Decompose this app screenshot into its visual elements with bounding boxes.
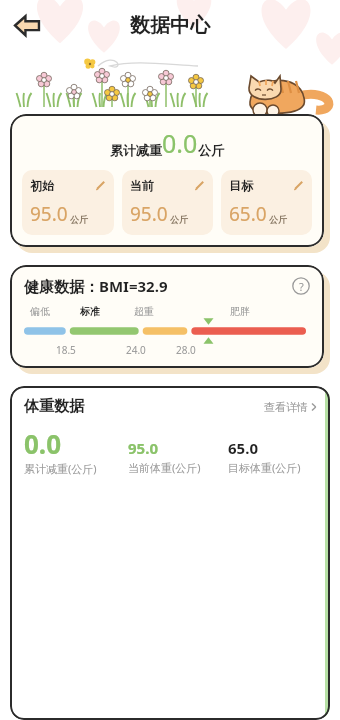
staticText: 累计减重(公斤) [24,461,97,476]
staticText: 目标 [229,178,253,193]
button[interactable]: 体重数据 [10,386,330,720]
staticText: 超重 [134,305,154,318]
staticText: 0.0 [162,126,198,160]
button[interactable]: Help [292,277,310,295]
staticText: 28.0 [176,343,196,357]
staticText: 健康数据：BMI=32.9 [24,276,168,296]
other: Edit 初始 [95,180,106,191]
staticText: ? [299,279,304,294]
staticText: 肥胖 [230,305,250,318]
staticText: 偏低 [30,305,50,318]
staticText: 65.0 [229,201,267,227]
staticText: 数据中心 [130,13,210,38]
staticText: 初始 [30,178,54,193]
staticText: 18.5 [56,343,76,357]
button[interactable]: 初始 [22,170,114,235]
staticText: 公斤 [170,214,188,225]
staticText: 公斤 [198,142,224,158]
staticText: 24.0 [126,343,146,357]
staticText: 查看详情 [264,400,308,414]
staticText: 95.0 [30,201,68,227]
other: Edit 当前 [194,180,205,191]
staticText: 95.0 [128,438,158,458]
staticText: 95.0 [130,201,168,227]
staticText: 累计减重 [110,142,162,158]
staticText: 当前体重(公斤) [128,460,201,475]
staticText: 当前 [130,178,154,193]
staticText: 体重数据 [24,397,84,416]
other: Edit 目标 [293,180,304,191]
staticText: 65.0 [228,438,258,458]
button[interactable]: 查看详情 [264,400,318,414]
staticText: 0.0 [24,426,62,461]
button[interactable]: Back [10,8,44,42]
staticText: 标准 [80,305,100,318]
staticText: 目标体重(公斤) [228,460,301,475]
staticText: 公斤 [269,214,287,225]
staticText: 公斤 [70,214,88,225]
button[interactable]: 当前 [122,170,213,235]
button[interactable]: 目标 [221,170,312,235]
